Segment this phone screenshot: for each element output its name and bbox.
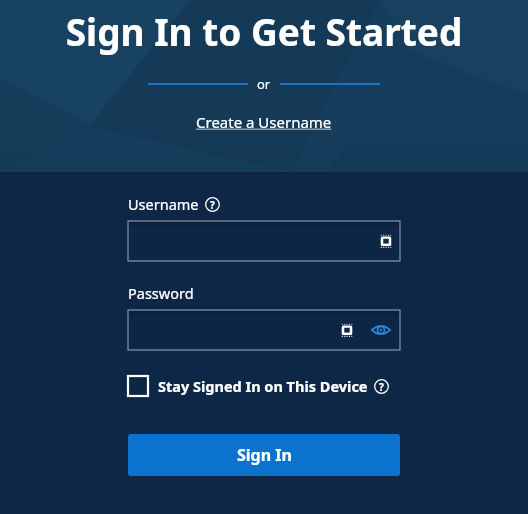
button[interactable]: Help [374,379,389,394]
staticText: Sign In to Get Started [0,6,528,56]
staticText: Password [128,283,194,303]
button[interactable]: Autofill [128,310,400,350]
button[interactable]: Autofill [377,232,395,250]
staticText: ? [379,380,384,394]
staticText: ? [210,198,215,212]
staticText: Sign In [237,444,292,466]
staticText: Create a Username [196,112,332,132]
button[interactable]: Create a Username [192,110,336,134]
button[interactable]: Show password [370,319,392,341]
staticText: Stay Signed In on This Device [158,376,368,396]
button[interactable]: Help [205,197,220,212]
button[interactable]: Stay Signed In on This Device [128,374,389,398]
button[interactable]: Autofill [338,321,356,339]
staticText: Username [128,194,199,214]
button[interactable]: Autofill [128,221,400,261]
button[interactable]: Sign In [128,434,400,476]
staticText: or [257,75,271,93]
